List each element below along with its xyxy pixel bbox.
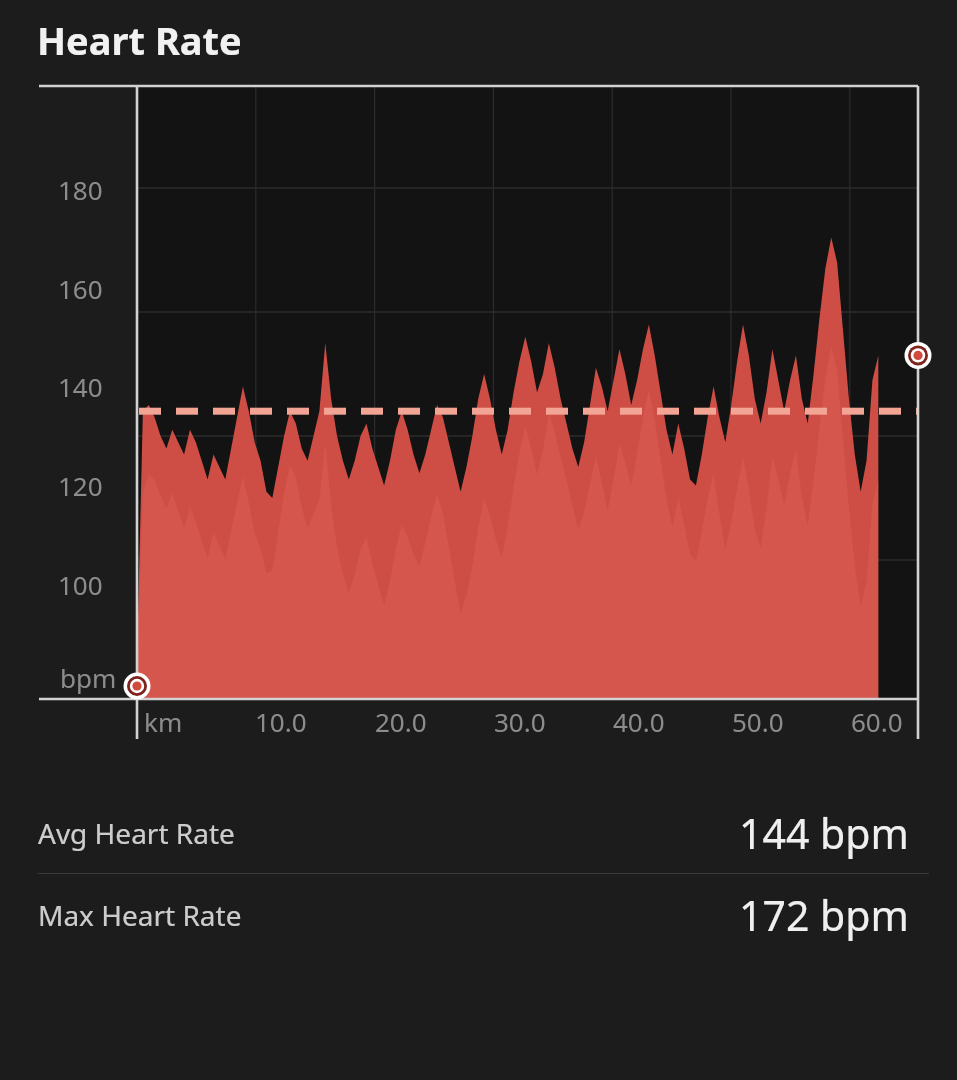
- staticText: 120: [58, 468, 103, 503]
- staticText: 140: [58, 369, 103, 404]
- button[interactable]: Max Heart Rate: [0, 874, 957, 955]
- staticText: Avg Heart Rate: [38, 814, 235, 852]
- staticText: 60.0: [851, 704, 903, 739]
- staticText: 20.0: [375, 704, 427, 739]
- staticText: 40.0: [613, 704, 665, 739]
- button[interactable]: Avg Heart Rate: [0, 792, 957, 873]
- staticText: 30.0: [494, 704, 546, 739]
- staticText: 144 bpm: [739, 805, 909, 861]
- staticText: 172 bpm: [739, 887, 909, 943]
- staticText: Max Heart Rate: [38, 896, 242, 934]
- staticText: 100: [58, 567, 103, 602]
- staticText: bpm: [60, 660, 117, 695]
- staticText: 50.0: [732, 704, 784, 739]
- staticText: 160: [58, 271, 103, 306]
- staticText: Heart Rate: [37, 14, 242, 66]
- staticText: 180: [58, 172, 103, 207]
- staticText: km: [144, 704, 183, 739]
- staticText: 10.0: [255, 704, 307, 739]
